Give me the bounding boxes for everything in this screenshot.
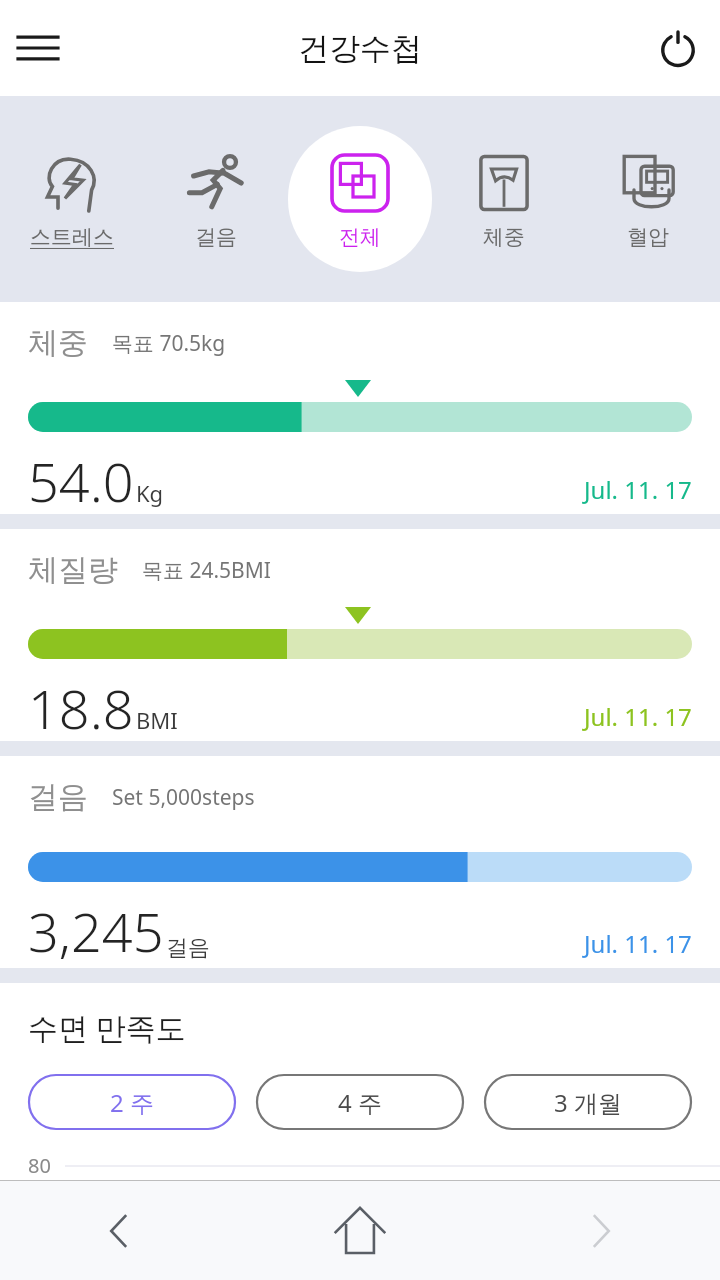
button[interactable]: 체중 <box>432 96 576 302</box>
staticText: 걸음 <box>166 934 210 962</box>
button[interactable]: 4 주 <box>256 1074 464 1130</box>
button[interactable]: 체중 <box>0 302 720 514</box>
staticText: 혈압 <box>627 224 669 250</box>
button[interactable]: Menu <box>10 20 66 76</box>
staticText: 3 개월 <box>554 1086 622 1119</box>
staticText: 4 주 <box>338 1086 382 1119</box>
staticText: Set 5,000steps <box>112 783 255 812</box>
staticText: 18.8 <box>28 671 134 741</box>
staticText: Jul. 11. 17 <box>584 473 692 506</box>
staticText: 체중 <box>28 324 88 362</box>
staticText: 80 <box>28 1152 51 1179</box>
button[interactable]: 체질량 <box>0 529 720 741</box>
staticText: BMI <box>136 705 178 735</box>
staticText: 스트레스 <box>30 224 114 250</box>
staticText: 2 주 <box>110 1086 154 1119</box>
staticText: 체질량 <box>28 551 118 589</box>
button[interactable]: 3 개월 <box>484 1074 692 1130</box>
staticText: 전체 <box>339 224 381 250</box>
staticText: Jul. 11. 17 <box>584 700 692 733</box>
button[interactable]: 전체 <box>288 96 432 302</box>
staticText: 걸음 <box>195 224 237 250</box>
staticText: Jul. 11. 17 <box>584 927 692 960</box>
staticText: 체중 <box>483 224 525 250</box>
staticText: Kg <box>136 478 164 508</box>
button[interactable]: 2 주 <box>28 1074 236 1130</box>
staticText: 목표 70.5kg <box>112 329 226 358</box>
button[interactable]: 혈압 <box>576 96 720 302</box>
button[interactable]: Power <box>648 18 708 78</box>
staticText: 걸음 <box>28 778 88 816</box>
button[interactable]: Home <box>240 1181 480 1280</box>
button[interactable]: 걸음 <box>144 96 288 302</box>
staticText: 수면 만족도 <box>28 1007 186 1048</box>
staticText: 54.0 <box>28 444 134 514</box>
staticText: 3,245 <box>28 894 164 968</box>
button[interactable]: Back <box>0 1181 240 1280</box>
button[interactable]: 스트레스 <box>0 96 144 302</box>
button[interactable]: 걸음 <box>0 756 720 968</box>
staticText: 건강수첩 <box>298 29 422 68</box>
staticText: 목표 24.5BMI <box>142 556 271 585</box>
